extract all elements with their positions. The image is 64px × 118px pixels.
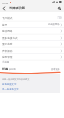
staticText: 已连接网络 bbox=[48, 23, 60, 26]
staticText: 蓝牙 bbox=[2, 23, 8, 26]
staticText: 小标题 bbox=[2, 61, 10, 64]
staticText: 更多连接方式 bbox=[2, 36, 18, 39]
staticText: 另一条蓝色文字 bbox=[2, 88, 19, 91]
button[interactable]: 移动网络 bbox=[0, 27, 64, 34]
button[interactable]: 应用管理 bbox=[0, 53, 64, 60]
staticText: 声音振动 bbox=[2, 49, 13, 52]
staticText: 飞行模式 bbox=[2, 16, 13, 19]
button[interactable]: 更多连接方式 bbox=[0, 34, 64, 41]
staticText: 副标题 bbox=[9, 68, 16, 71]
staticText: 应用管理 bbox=[2, 55, 13, 58]
staticText: 查看更多 bbox=[51, 68, 60, 71]
staticText: 标题 bbox=[2, 67, 8, 71]
button[interactable]: 搜索 bbox=[57, 6, 62, 11]
button[interactable]: 声音振动 bbox=[0, 47, 64, 54]
staticText: 显示亮度 bbox=[2, 42, 13, 45]
staticText: 这是一段说明文字内容说明文 bbox=[2, 78, 30, 81]
staticText: 10:24 bbox=[2, 1, 9, 4]
button[interactable]: 返回 bbox=[1, 5, 7, 11]
button[interactable]: 蓝牙 bbox=[0, 21, 64, 28]
staticText: 蓝色链接文字 bbox=[2, 83, 17, 86]
button[interactable]: 飞行模式 bbox=[0, 14, 64, 21]
button[interactable]: 显示亮度 bbox=[0, 40, 64, 47]
staticText: 无障碍功能 bbox=[9, 6, 25, 10]
staticText: 移动网络 bbox=[2, 29, 13, 32]
